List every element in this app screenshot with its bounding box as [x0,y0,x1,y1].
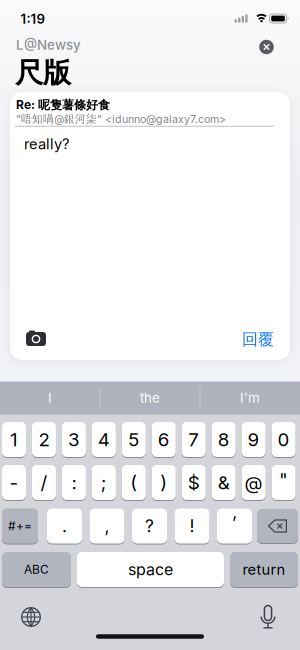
staticText: I [48,390,52,406]
button[interactable]: 7 [182,421,206,457]
staticText: ) [160,471,167,493]
staticText: 4 [98,428,110,450]
staticText: space [128,560,173,579]
button[interactable]: 9 [242,421,266,457]
button[interactable]: 8 [212,421,236,457]
button[interactable]: #+= [2,508,38,544]
button[interactable]: the [101,381,199,414]
staticText: 1:19 [20,11,45,27]
staticText: return [242,561,285,578]
staticText: I'm [240,390,260,406]
button[interactable]: 1 [2,421,26,457]
staticText: 3 [68,428,80,450]
button[interactable]: ? [132,508,167,544]
staticText: "唔知喎@銀河柒" <idunno@galaxy7.com> [16,112,226,125]
staticText: ? [145,516,154,536]
staticText: 回覆 [242,330,274,349]
button[interactable]: , [89,508,124,544]
staticText: #+= [8,519,32,533]
button[interactable]: 2 [32,421,56,457]
button[interactable]: Dictation [258,604,278,632]
button[interactable]: I [1,381,99,414]
staticText: / [40,471,47,493]
button[interactable]: ABC [2,551,71,587]
staticText: 6 [158,428,170,450]
button[interactable]: Delete [257,508,298,543]
button[interactable]: Close [256,37,276,57]
button[interactable]: & [212,464,236,500]
button[interactable]: ) [152,464,176,500]
button[interactable]: : [62,464,86,500]
button[interactable]: Insert photo [23,328,49,348]
button[interactable]: ! [174,508,209,544]
staticText: 9 [248,428,260,450]
button[interactable]: return [230,551,298,587]
staticText: ! [189,516,194,536]
staticText: " [279,468,288,490]
staticText: 2 [38,428,49,450]
button[interactable]: I'm [201,381,299,414]
button[interactable]: / [32,464,56,500]
staticText: 尺版 [15,56,71,90]
staticText: . [62,516,67,536]
staticText: 8 [218,428,230,450]
button[interactable]: 6 [152,421,176,457]
button[interactable]: 5 [122,421,146,457]
staticText: ( [130,471,137,493]
button[interactable]: space [77,551,224,587]
button[interactable]: @ [242,464,266,500]
button[interactable]: 3 [62,421,86,457]
button[interactable]: " [272,464,296,500]
staticText: really? [24,135,69,153]
staticText: , [104,516,109,536]
button[interactable]: $ [182,464,206,500]
button[interactable]: 0 [272,421,296,457]
button[interactable]: ( [122,464,146,500]
staticText: - [9,471,18,493]
button[interactable]: ; [92,464,116,500]
staticText: & [218,471,230,493]
staticText: @ [245,471,263,493]
button[interactable]: 回覆 [242,330,274,349]
staticText: L@Newsy [16,37,81,53]
button[interactable]: - [2,464,26,500]
button[interactable]: ’ [217,508,252,544]
staticText: the [140,390,160,406]
staticText: $ [188,471,200,493]
button[interactable]: Next keyboard [19,605,43,629]
staticText: 7 [188,428,199,450]
button[interactable]: 4 [92,421,116,457]
staticText: ; [101,471,107,493]
staticText: Re: 呢隻薯條好食 [16,98,110,112]
staticText: 5 [128,428,139,450]
staticText: 1 [10,428,18,450]
staticText: ABC [24,562,49,577]
button[interactable]: . [47,508,82,544]
staticText: 0 [278,428,290,450]
staticText: : [71,471,76,493]
staticText: ’ [232,513,237,533]
